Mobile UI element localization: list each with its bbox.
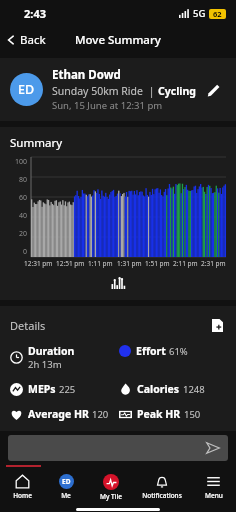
staticText: Sun, 15 June at 12:31 pm — [52, 99, 163, 112]
button[interactable]: Edit — [200, 77, 226, 103]
staticText: 1:51 pm — [145, 259, 170, 268]
staticText: 0 — [23, 247, 28, 257]
staticText: 225 — [59, 383, 76, 396]
staticText: Notifications — [142, 491, 182, 500]
button[interactable]: Send — [8, 435, 228, 461]
staticText: 40 — [19, 211, 28, 221]
staticText: Me — [61, 491, 71, 500]
staticText: 20 — [19, 229, 28, 239]
staticText: 100 — [15, 157, 28, 167]
staticText: | — [146, 84, 158, 98]
staticText: Peak HR — [137, 407, 181, 421]
staticText: Sunday 50km Ride — [52, 84, 146, 98]
staticText: MEPs — [28, 382, 56, 396]
button[interactable]: Average HR — [10, 407, 109, 421]
staticText: ED — [18, 81, 35, 98]
button[interactable]: Chart options — [107, 272, 129, 294]
staticText: Average HR — [28, 407, 89, 421]
button[interactable]: Peak HR — [119, 407, 201, 421]
staticText: 150 — [184, 408, 201, 421]
button[interactable]: Calories — [119, 382, 205, 396]
staticText: ED — [62, 477, 71, 486]
staticText: 60 — [19, 193, 28, 203]
button[interactable]: Notifications — [133, 467, 191, 507]
button[interactable]: Menu — [191, 467, 236, 507]
staticText: 120 — [92, 408, 109, 421]
staticText: 80 — [19, 175, 28, 185]
staticText: 1248 — [183, 383, 205, 396]
staticText: 2:31 pm — [201, 259, 226, 268]
staticText: Back — [20, 32, 46, 48]
staticText: 2h 13m — [28, 358, 62, 371]
button[interactable]: ED — [44, 467, 88, 507]
button[interactable]: Effort — [119, 344, 188, 358]
staticText: Details — [10, 318, 206, 333]
button[interactable]: Back — [0, 29, 52, 51]
staticText: 1:11 pm — [88, 259, 113, 268]
staticText: 62 — [213, 9, 222, 19]
staticText: Summary — [10, 135, 62, 151]
staticText: Calories — [137, 382, 180, 396]
staticText: Duration — [28, 344, 75, 358]
staticText: 2:11 pm — [173, 259, 198, 268]
staticText: Menu — [205, 491, 223, 500]
button[interactable]: My Tile — [88, 467, 133, 507]
button[interactable]: Add note — [206, 314, 228, 336]
button[interactable]: ED — [0, 58, 236, 121]
staticText: 12:31 pm — [24, 259, 53, 268]
button[interactable]: MEPs — [10, 382, 76, 396]
staticText: 1:31 pm — [117, 259, 142, 268]
staticText: Home — [13, 491, 32, 500]
button[interactable]: Duration — [10, 344, 75, 371]
staticText: Cycling — [158, 84, 196, 98]
staticText: Ethan Dowd — [52, 67, 121, 83]
staticText: 5G — [193, 7, 206, 20]
staticText: Move Summary — [75, 32, 161, 48]
staticText: 12:51 pm — [56, 259, 85, 268]
other: Send — [204, 439, 222, 457]
staticText: Effort — [136, 344, 166, 358]
staticText: 61% — [169, 345, 188, 358]
staticText: 2:43 — [24, 6, 46, 21]
button[interactable]: Home — [0, 467, 44, 507]
staticText: My Tile — [100, 492, 122, 501]
